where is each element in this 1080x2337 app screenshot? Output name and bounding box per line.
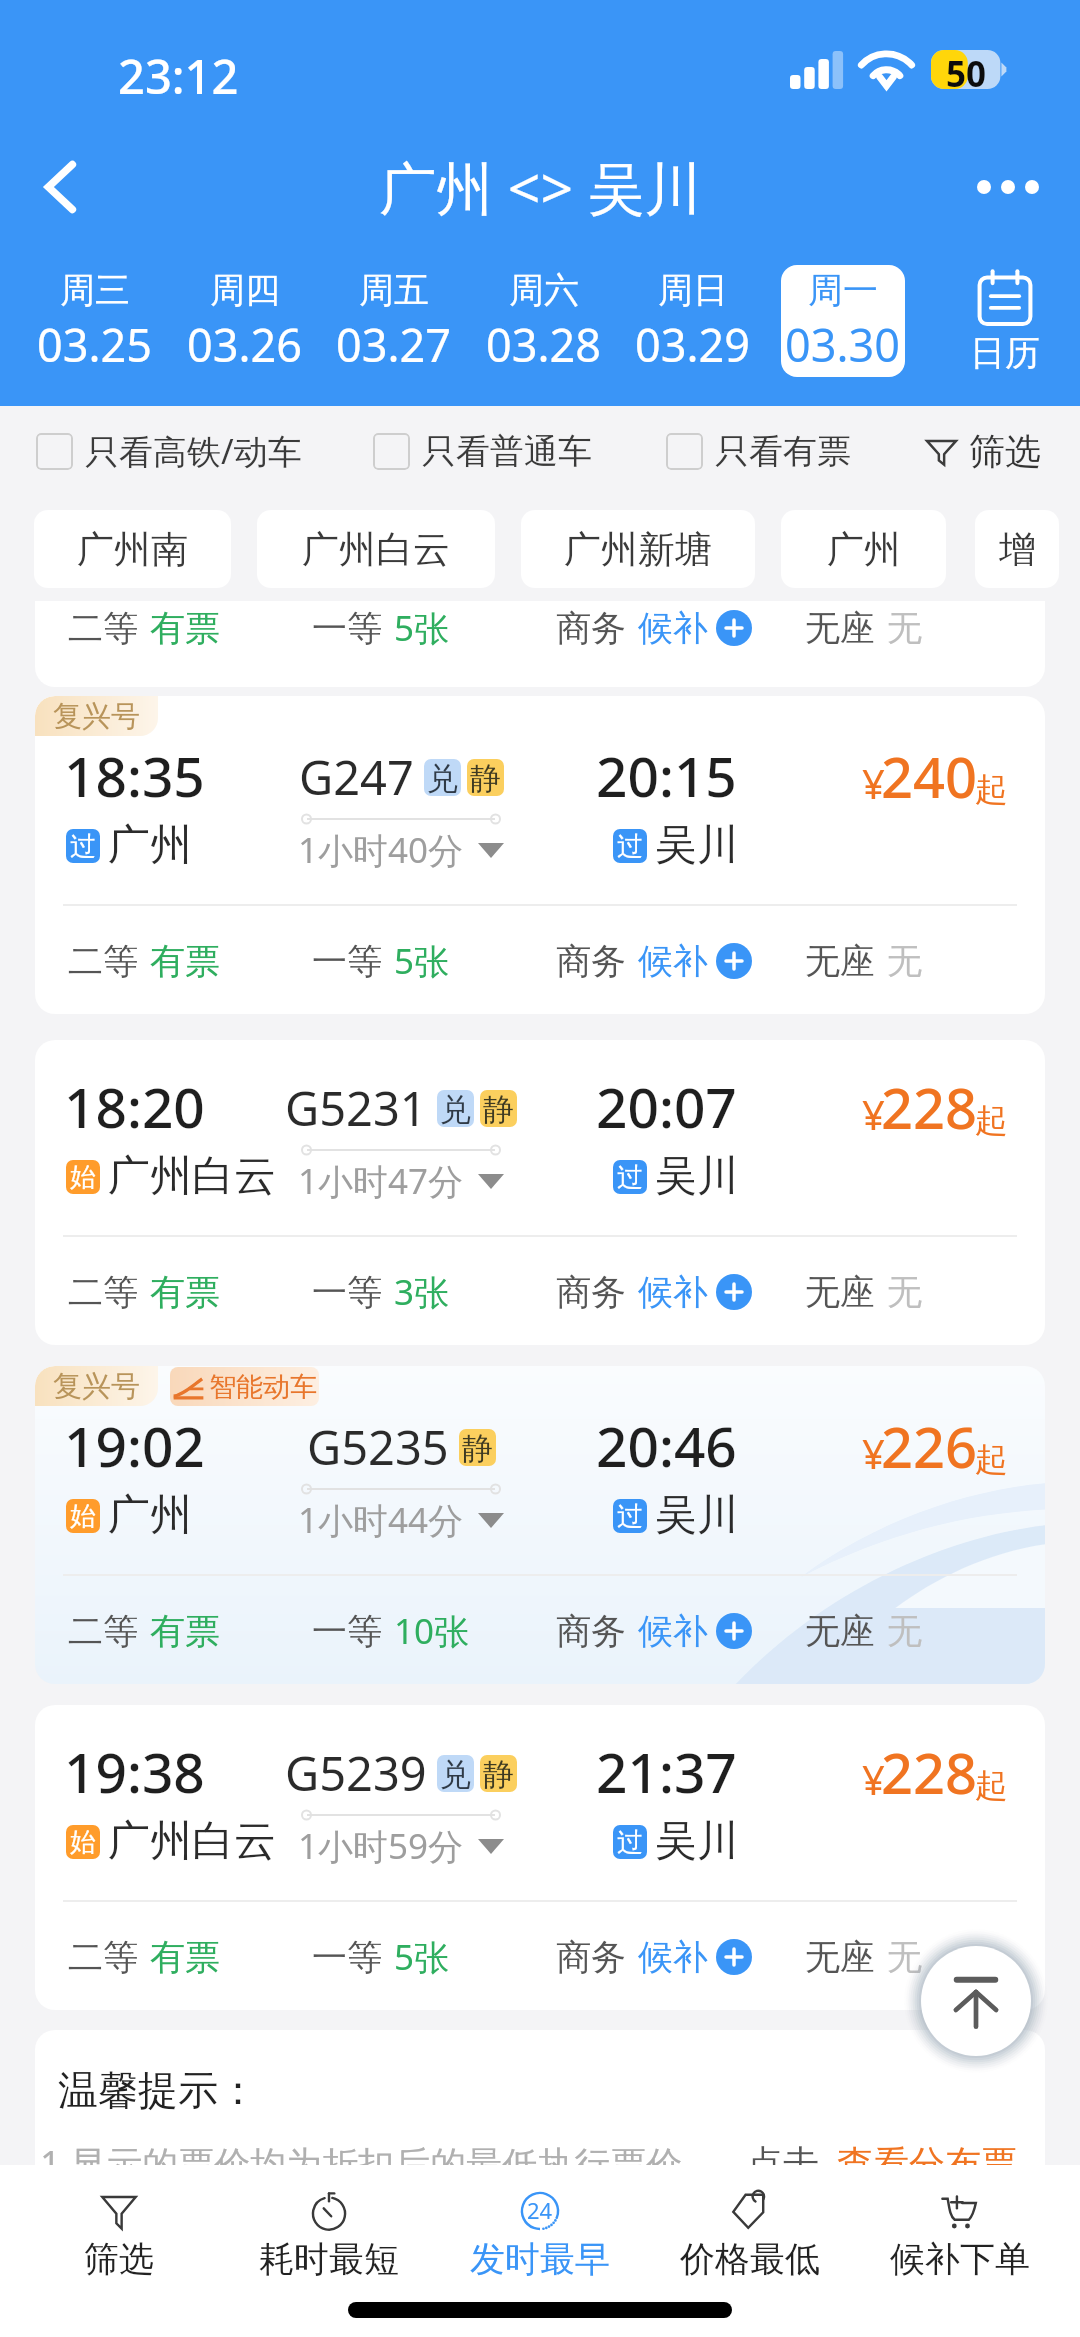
staticText: 226 [881,1408,978,1484]
staticText: 复兴号 [53,1368,140,1405]
staticText: 发时最早 [470,2237,610,2281]
staticText: 广州 [108,819,192,872]
button[interactable]: 广州 [781,510,946,588]
staticText: ¥ [862,756,885,810]
staticText: 03.25 [37,314,153,375]
staticText: 广州白云 [108,1150,276,1203]
staticText: 10张 [394,1607,470,1655]
staticText: 起 [975,1439,1008,1481]
staticText: 周日 [658,268,728,312]
button[interactable]: 周四 [183,265,307,377]
staticText: 有票 [150,1609,220,1653]
button[interactable]: 只看高铁/动车 [36,428,302,474]
staticText: G247 [299,745,414,809]
button[interactable]: 19:38 [35,1705,1045,2010]
staticText: 商务 [556,939,626,983]
staticText: 广州 [827,526,901,573]
staticText: G5235 [307,1415,449,1479]
button[interactable]: 周六 [482,265,606,377]
staticText: 有票 [150,1935,220,1979]
staticText: 过 [617,1500,643,1533]
staticText: 19:02 [64,1408,205,1483]
staticText: 二等 [68,939,138,983]
staticText: ¥ [862,1752,885,1806]
button[interactable]: 增 [975,510,1059,588]
button[interactable]: 周一 [781,265,905,377]
button[interactable]: 广州白云 [257,510,495,588]
staticText: 有票 [150,1270,220,1314]
staticText: ¥ [862,1426,885,1480]
button[interactable]: Back [22,147,102,227]
button[interactable]: 只看普通车 [373,430,592,473]
button[interactable]: 24 [435,2165,645,2283]
staticText: 一等 [312,1270,382,1314]
button[interactable]: 周日 [631,265,755,377]
staticText: 周六 [509,268,579,312]
staticText: 起 [975,1100,1008,1142]
staticText: 1小时47分 [298,1157,464,1205]
staticText: 无 [887,1270,922,1314]
staticText: 5张 [394,604,450,652]
staticText: 候补 [638,1935,708,1979]
staticText: 03.28 [486,314,602,375]
button[interactable]: 筛选 [925,429,1041,474]
staticText: 5张 [394,1933,450,1981]
button[interactable]: 广州南 [34,510,231,588]
staticText: 20:07 [596,1069,737,1144]
button[interactable]: More options [968,147,1048,227]
staticText: 商务 [556,1609,626,1653]
button[interactable]: 复兴号 [35,1366,1045,1684]
staticText: 只看有票 [715,430,851,473]
button[interactable]: 价格最低 [645,2165,855,2283]
button[interactable]: 二等 [35,601,1045,687]
button[interactable]: Scroll to top [921,1946,1031,2056]
button[interactable]: 耗时最短 [224,2165,434,2283]
staticText: 温馨提示： [58,2065,258,2115]
staticText: 23:12 [118,44,239,108]
button[interactable]: 复兴号 [35,696,1045,1014]
staticText: 18:35 [64,738,205,813]
staticText: 无座 [805,1609,875,1653]
staticText: 候补 [638,1270,708,1314]
staticText: 候补 [638,606,708,650]
staticText: 无座 [805,939,875,983]
staticText: 候补下单 [890,2237,1030,2281]
button[interactable]: 周三 [33,265,157,377]
staticText: 一等 [312,1609,382,1653]
staticText: G5239 [285,1741,427,1805]
staticText: 1小时59分 [298,1822,464,1870]
staticText: 候补 [638,1609,708,1653]
button[interactable]: 周五 [332,265,456,377]
button[interactable]: 18:20 [35,1040,1045,1345]
staticText: 二等 [68,1609,138,1653]
staticText: 静 [483,1755,514,1792]
staticText: 广州南 [77,526,188,573]
staticText: 广州 <> 吴川 [379,148,702,226]
staticText: 吴川 [655,1150,739,1203]
staticText: 吴川 [655,819,739,872]
staticText: 商务 [556,1270,626,1314]
staticText: 1小时40分 [298,826,464,874]
staticText: 日历 [970,331,1040,375]
staticText: 无 [887,1935,922,1979]
staticText: 过 [617,1161,643,1194]
button[interactable]: 候补下单 [855,2165,1065,2283]
staticText: 商务 [556,606,626,650]
button[interactable]: 广州新塘 [521,510,755,588]
staticText: 始 [70,1500,96,1533]
button[interactable]: 日历 [930,265,1080,377]
staticText: 1.显示的票价均为折扣后的最低执行票价。 [40,2139,719,2188]
staticText: 二等 [68,606,138,650]
staticText: 一等 [312,606,382,650]
staticText: 始 [70,1826,96,1859]
staticText: 5张 [394,937,450,985]
button[interactable]: 筛选 [14,2165,224,2283]
staticText: G5231 [285,1076,427,1140]
staticText: 静 [470,759,501,796]
button[interactable]: 只看有票 [666,430,851,473]
staticText: 兑 [440,1090,471,1127]
staticText: ¥ [862,1087,885,1141]
staticText: 周一 [808,268,878,312]
staticText: 静 [462,1429,493,1466]
staticText: 一等 [312,1935,382,1979]
